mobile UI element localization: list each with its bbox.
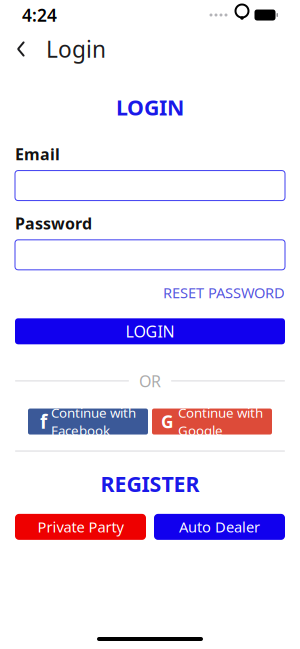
button[interactable]: G bbox=[152, 409, 272, 435]
staticText: Continue with Google bbox=[178, 404, 263, 439]
staticText: Private Party bbox=[37, 517, 123, 537]
staticText: RESET PASSWORD bbox=[163, 283, 285, 302]
staticText: Auto Dealer bbox=[179, 517, 260, 537]
staticText: Continue with Facebook bbox=[51, 404, 136, 439]
button[interactable]: Auto Dealer bbox=[154, 514, 285, 540]
staticText: 4:24 bbox=[22, 3, 57, 26]
staticText: LOGIN bbox=[125, 321, 174, 342]
button[interactable]: Login bbox=[36, 28, 106, 70]
button[interactable]: Back bbox=[6, 32, 36, 66]
staticText: LOGIN bbox=[116, 93, 184, 121]
button[interactable]: LOGIN bbox=[15, 318, 285, 344]
staticText: OR bbox=[139, 370, 161, 391]
staticText: REGISTER bbox=[100, 470, 199, 498]
button[interactable]: RESET PASSWORD bbox=[163, 279, 285, 306]
button[interactable]: f bbox=[28, 409, 148, 435]
staticText: G bbox=[161, 410, 174, 433]
staticText: Login bbox=[46, 34, 106, 64]
staticText: f bbox=[40, 409, 47, 434]
staticText: Email bbox=[15, 143, 60, 164]
staticText: Password bbox=[15, 213, 92, 234]
button[interactable]: Private Party bbox=[15, 514, 146, 540]
